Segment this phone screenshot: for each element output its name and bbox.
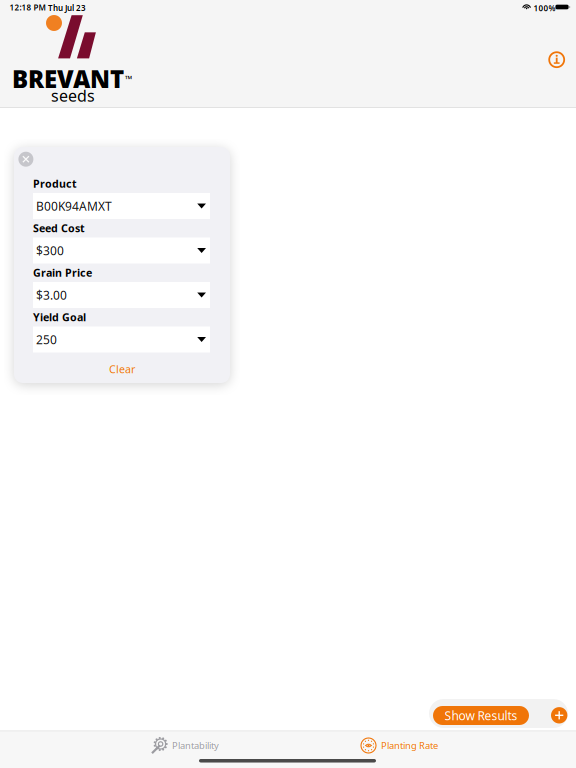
button[interactable]: Show Results <box>433 706 529 725</box>
button[interactable]: Close <box>15 149 36 170</box>
staticText: seeds <box>51 85 95 106</box>
staticText: Yield Goal <box>33 310 86 324</box>
button[interactable]: 250 <box>33 326 210 352</box>
button[interactable]: $300 <box>33 237 210 263</box>
staticText: 100% <box>533 3 555 13</box>
staticText: ™ <box>125 73 132 85</box>
staticText: Show Results <box>444 707 517 723</box>
staticText: 12:18 PM <box>9 2 45 13</box>
button[interactable]: Clear <box>14 358 230 380</box>
staticText: Plantability <box>172 739 219 752</box>
staticText: Product <box>33 176 77 191</box>
button[interactable]: Plantability <box>148 735 222 756</box>
button[interactable]: Information <box>545 48 568 71</box>
staticText: $300 <box>36 242 64 258</box>
staticText: Grain Price <box>33 265 92 280</box>
staticText: Thu Jul 23 <box>48 3 86 13</box>
staticText: $3.00 <box>36 287 67 303</box>
staticText: BREVANT <box>12 63 124 95</box>
staticText: Clear <box>109 362 135 376</box>
button[interactable]: B00K94AMXT <box>33 193 210 219</box>
staticText: Planting Rate <box>381 739 438 752</box>
button[interactable]: Add <box>549 705 570 726</box>
staticText: 250 <box>36 331 57 347</box>
staticText: Seed Cost <box>33 221 85 235</box>
button[interactable]: Planting Rate <box>357 735 441 756</box>
button[interactable]: $3.00 <box>33 282 210 308</box>
staticText: B00K94AMXT <box>36 198 112 214</box>
